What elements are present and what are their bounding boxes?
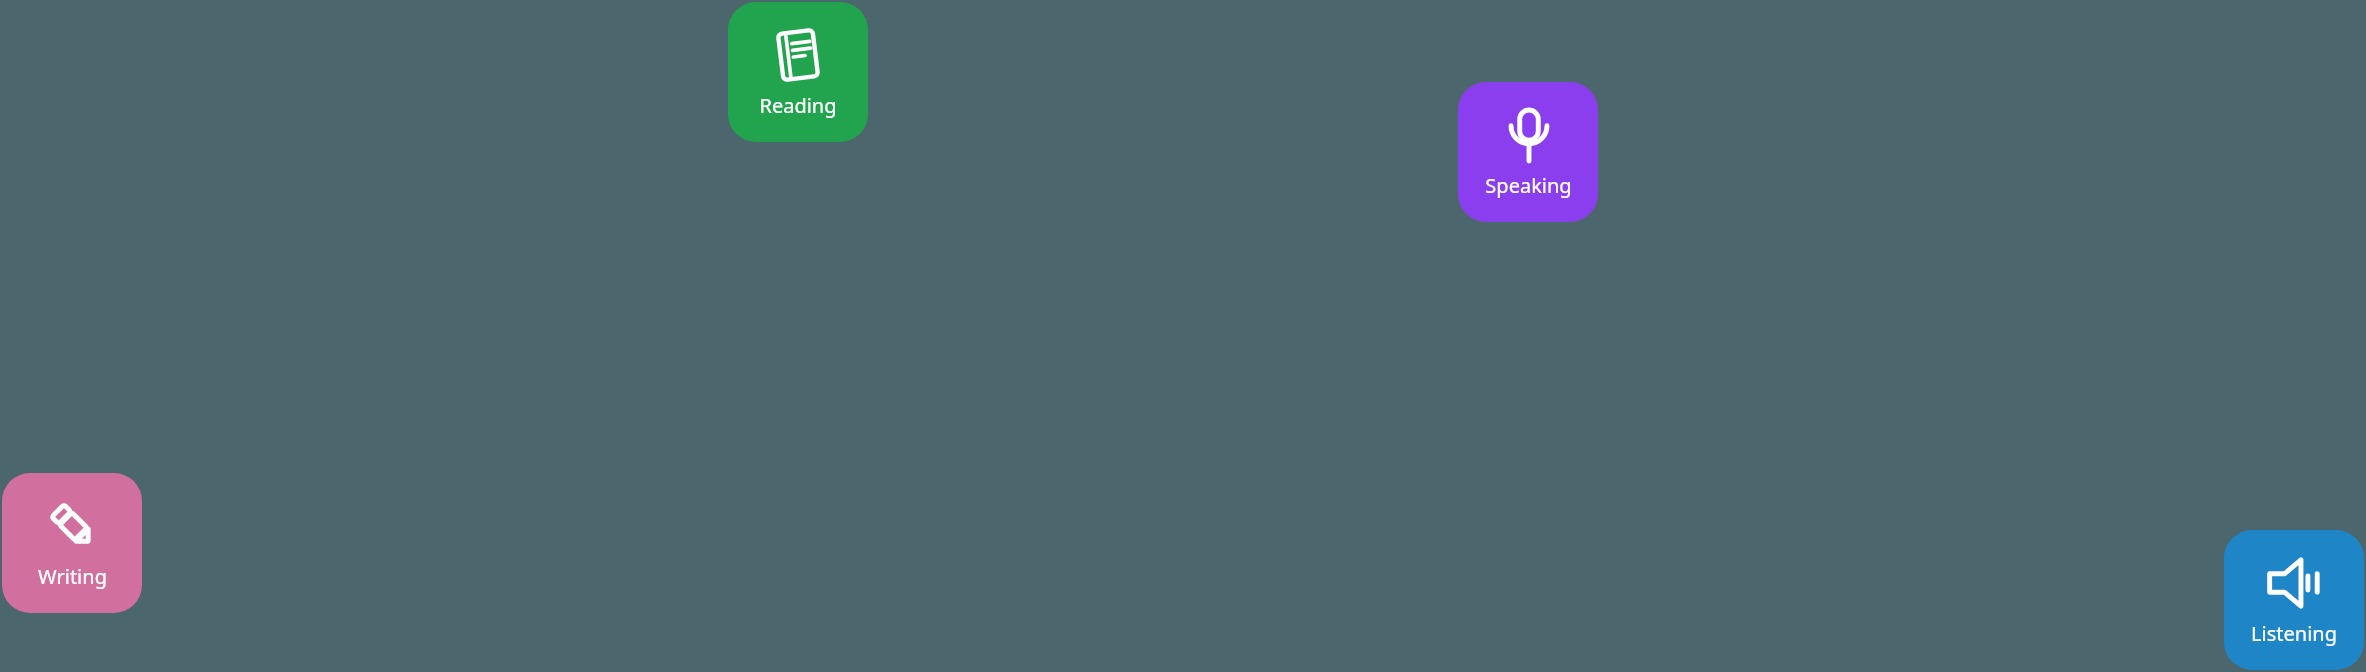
button[interactable]: Reading — [728, 2, 868, 142]
button[interactable]: Listening — [2224, 530, 2364, 670]
button[interactable]: Writing — [2, 473, 142, 613]
staticText: Speaking — [1485, 172, 1572, 199]
button[interactable]: Speaking — [1458, 82, 1598, 222]
staticText: Writing — [38, 563, 107, 590]
staticText: Reading — [759, 92, 837, 119]
staticText: Listening — [2251, 620, 2337, 647]
